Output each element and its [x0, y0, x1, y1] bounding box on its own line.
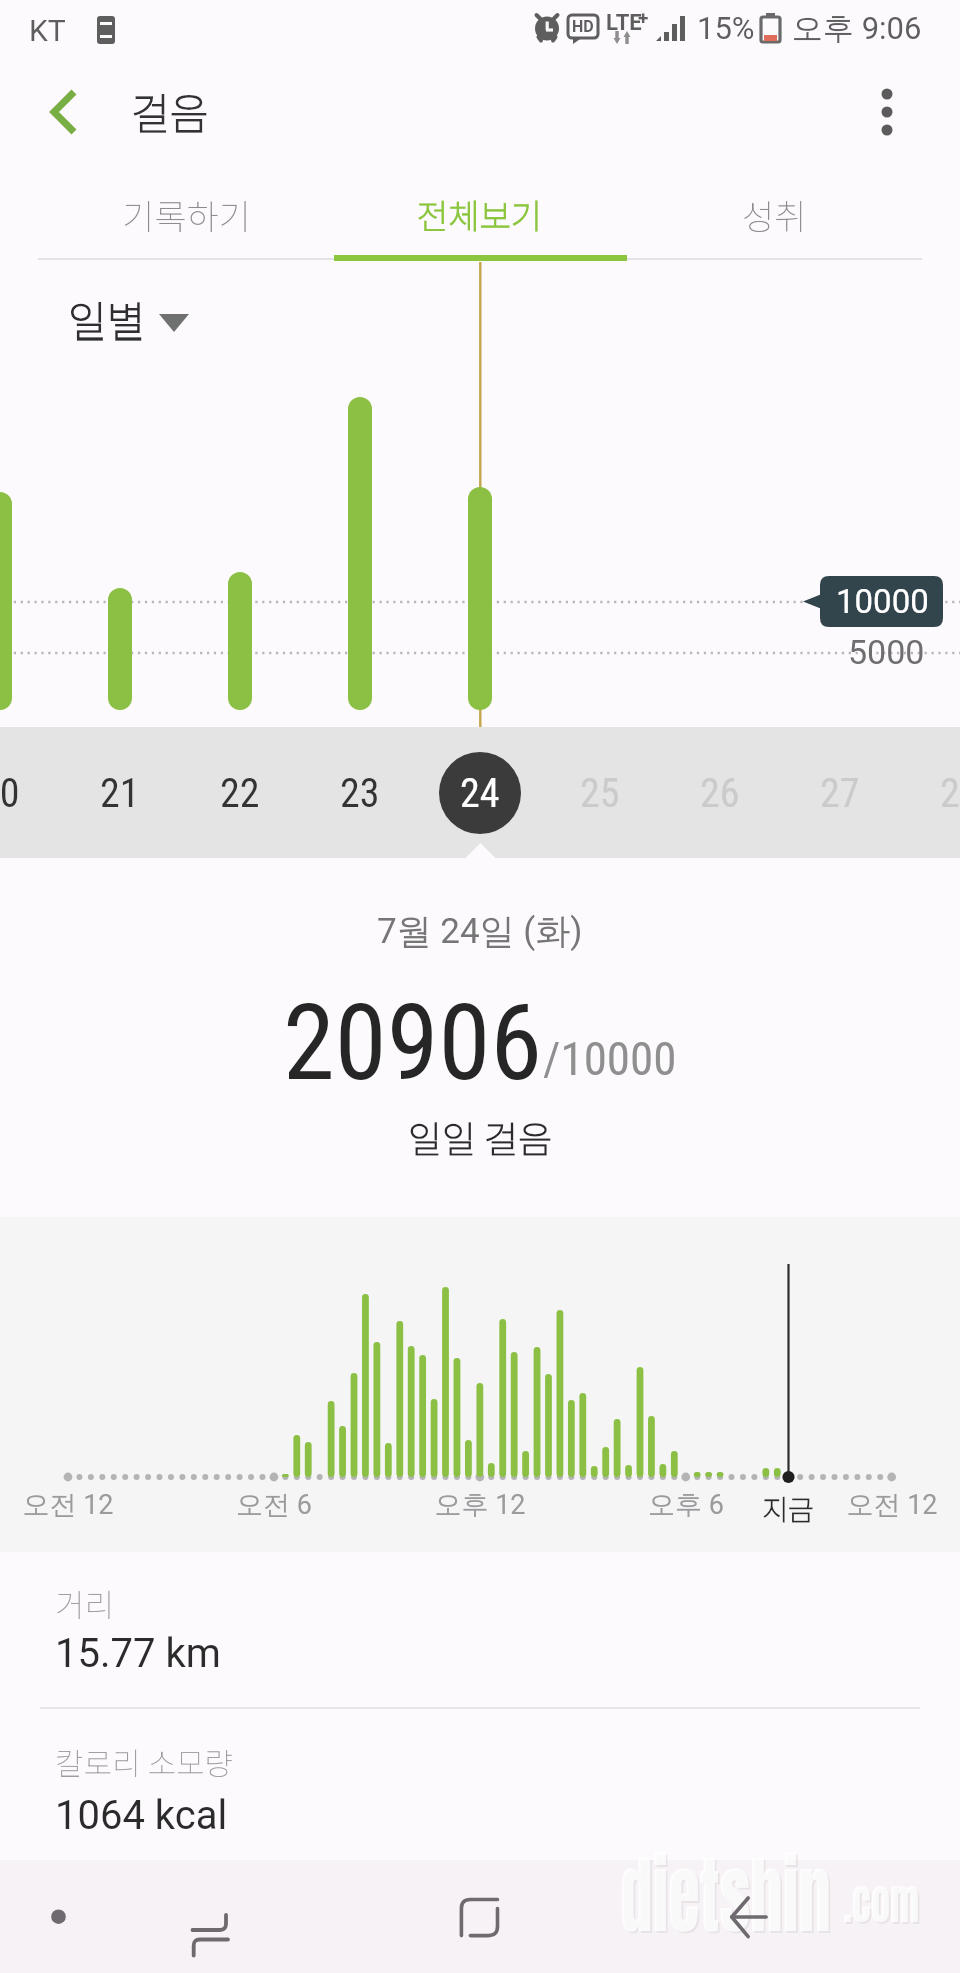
staticText: 지금	[762, 1488, 814, 1529]
staticText: 칼로리 소모량	[55, 1739, 233, 1784]
staticText: 21	[100, 770, 140, 817]
staticText: 오후 12	[434, 1488, 526, 1522]
staticText: 15.77 km	[55, 1630, 221, 1677]
staticText: 20	[0, 770, 20, 817]
staticText: 일별	[68, 288, 146, 349]
button[interactable]: Recent apps	[172, 1878, 250, 1956]
staticText: 오전 12	[846, 1488, 938, 1522]
staticText: 전체보기	[417, 190, 543, 239]
staticText: 오전 6	[236, 1488, 312, 1522]
staticText: 22	[220, 770, 260, 817]
button[interactable]: 25	[540, 752, 660, 834]
staticText: .com	[843, 1866, 919, 1938]
button[interactable]: 27	[780, 752, 900, 834]
staticText: 26	[700, 770, 740, 817]
staticText: 28	[940, 770, 960, 817]
button[interactable]: 23	[300, 752, 420, 834]
button[interactable]: 21	[60, 752, 180, 834]
button[interactable]: 20	[0, 752, 60, 834]
button[interactable]: More options	[852, 76, 924, 148]
button[interactable]: Home	[442, 1878, 520, 1956]
staticText: 오후 9:06	[792, 9, 922, 48]
staticText: dietshin	[620, 1831, 830, 1959]
button[interactable]: 24	[420, 752, 540, 834]
button[interactable]: 전체보기	[333, 172, 627, 256]
staticText: 23	[340, 770, 380, 817]
staticText: +	[638, 6, 649, 28]
staticText: 10000	[836, 582, 929, 621]
button[interactable]: Back	[27, 76, 99, 148]
button[interactable]: 22	[180, 752, 300, 834]
button[interactable]: 기록하기	[39, 172, 333, 256]
staticText: HD	[572, 17, 594, 36]
staticText: 기록하기	[122, 189, 251, 240]
button[interactable]: 칼로리 소모량	[0, 1739, 960, 1867]
button[interactable]: Notifications	[20, 1878, 98, 1956]
button[interactable]: Back	[710, 1878, 788, 1956]
staticText: 5000	[848, 632, 925, 672]
staticText: 25	[580, 770, 620, 817]
staticText: 걸음	[131, 80, 209, 141]
button[interactable]: Change period	[155, 300, 201, 344]
staticText: 24	[460, 770, 500, 817]
button[interactable]: 26	[660, 752, 780, 834]
staticText: 1064 kcal	[55, 1792, 228, 1839]
staticText: 일일 걸음	[408, 1110, 553, 1164]
staticText: .com	[845, 1868, 921, 1940]
staticText: 성취	[742, 189, 807, 240]
button[interactable]: 성취	[627, 172, 921, 256]
staticText: 7월 24일 (화)	[377, 909, 583, 953]
staticText: dietshin	[622, 1833, 832, 1961]
staticText: KT	[29, 13, 66, 48]
staticText: 오후 6	[648, 1488, 724, 1522]
staticText: 거리	[55, 1580, 114, 1626]
staticText: /10000	[543, 1031, 677, 1086]
staticText: 20906	[283, 982, 543, 1105]
staticText: 오전 12	[22, 1488, 114, 1522]
staticText: 27	[820, 770, 860, 817]
staticText: 15%	[697, 10, 755, 46]
staticText: LTE	[606, 10, 642, 36]
button[interactable]: 거리	[0, 1580, 960, 1708]
button[interactable]: 28	[900, 752, 960, 834]
